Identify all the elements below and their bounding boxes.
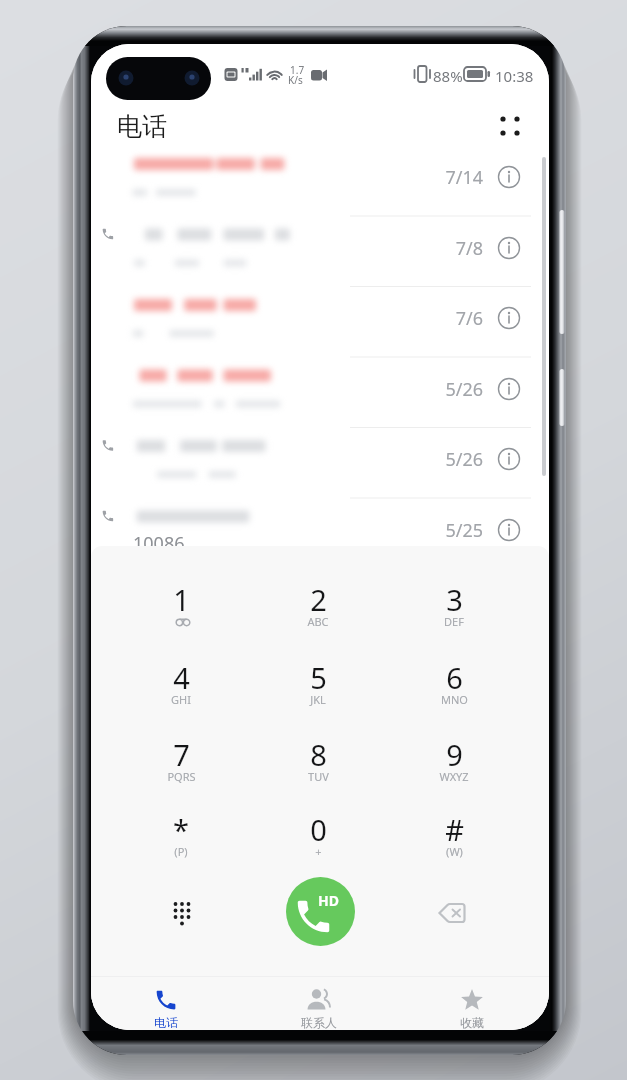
staticText: 88%	[433, 66, 463, 86]
button[interactable]: 9	[404, 735, 504, 797]
staticText: 收藏	[460, 1015, 484, 1030]
button[interactable]: 8	[268, 735, 368, 797]
staticText: DEF	[444, 614, 464, 629]
staticText: #	[445, 810, 464, 849]
staticText: 5	[310, 658, 327, 697]
staticText: 0	[310, 810, 327, 849]
staticText: 电话	[154, 1015, 178, 1030]
staticText: +	[315, 844, 322, 859]
staticText: 7/14	[91, 165, 483, 190]
button[interactable]: 6	[404, 658, 504, 720]
staticText: 3	[446, 580, 463, 619]
button[interactable]: 3	[404, 580, 504, 642]
button[interactable]: Call details	[493, 373, 525, 405]
button[interactable]: 7	[131, 735, 231, 797]
button[interactable]: Call details	[493, 161, 525, 193]
staticText: ABC	[307, 614, 329, 629]
staticText: MNO	[441, 692, 468, 707]
staticText: 电话	[117, 111, 167, 142]
staticText: (P)	[174, 844, 188, 859]
staticText: K/s	[288, 73, 303, 87]
staticText: TUV	[308, 769, 329, 784]
button[interactable]: 5	[268, 658, 368, 720]
button[interactable]: Call	[286, 877, 355, 946]
staticText: JKL	[310, 692, 326, 707]
button[interactable]: Hide keypad	[160, 889, 204, 933]
button[interactable]: 电话	[116, 982, 216, 1030]
staticText: 5/25	[91, 518, 483, 543]
staticText: 10:38	[495, 66, 534, 86]
staticText: 2	[310, 580, 327, 619]
staticText: *	[173, 810, 189, 849]
staticText: 10086	[133, 531, 185, 556]
button[interactable]: 4	[131, 658, 231, 720]
button[interactable]: 联系人	[269, 982, 369, 1030]
button[interactable]: Call details	[493, 232, 525, 264]
staticText: 1.7	[290, 63, 305, 77]
staticText: 8	[310, 735, 327, 774]
button[interactable]: 收藏	[422, 982, 522, 1030]
staticText: (W)	[446, 844, 463, 859]
staticText: 联系人	[301, 1015, 337, 1030]
button[interactable]: *	[131, 810, 231, 872]
staticText: 6	[446, 658, 463, 697]
button[interactable]: Call details	[493, 514, 525, 546]
button[interactable]: #	[404, 810, 504, 872]
staticText: 7/8	[91, 236, 483, 261]
button[interactable]: Call details	[493, 443, 525, 475]
button[interactable]: 0	[268, 810, 368, 872]
button[interactable]: More options	[486, 102, 534, 150]
button[interactable]: Delete	[429, 893, 477, 933]
staticText: 5/26	[91, 377, 483, 402]
button[interactable]: Call details	[493, 302, 525, 334]
staticText: 9	[446, 735, 463, 774]
staticText: 7	[173, 735, 190, 774]
staticText: 5/26	[91, 447, 483, 472]
staticText: WXYZ	[439, 769, 469, 784]
staticText: HD	[318, 891, 339, 910]
staticText: 4	[173, 658, 190, 697]
staticText: PQRS	[167, 769, 196, 784]
staticText: 7/6	[91, 306, 483, 331]
staticText: GHI	[171, 692, 191, 707]
button[interactable]: 1	[131, 580, 231, 642]
staticText: 1	[173, 580, 190, 619]
button[interactable]: 2	[268, 580, 368, 642]
